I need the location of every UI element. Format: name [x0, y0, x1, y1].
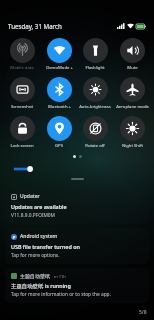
staticText: Flashlight [85, 65, 105, 71]
staticText: Android system [20, 233, 58, 240]
staticText: Mobile data [10, 65, 34, 71]
button[interactable]: Rotate off [77, 116, 113, 149]
staticText: Rotate off [85, 143, 105, 149]
staticText: Lock screen [10, 143, 34, 149]
staticText: Updates are available [11, 203, 67, 210]
staticText: 主题自动壁纸 is running [11, 282, 71, 289]
staticText: Tap for more options. [11, 252, 60, 259]
button[interactable]: Lock screen [4, 116, 40, 149]
staticText: P [13, 235, 16, 240]
button[interactable]: Mobile data [4, 38, 40, 71]
staticText: USB file transfer turned on [11, 243, 80, 250]
button[interactable]: Flashlight [77, 38, 113, 71]
button[interactable] [0, 163, 154, 175]
button[interactable]: Night Shift [114, 116, 150, 149]
staticText: Updater [20, 193, 40, 200]
staticText: Night Shift [122, 143, 143, 149]
staticText: GPS [55, 143, 63, 149]
button[interactable]: Screenshot [4, 77, 40, 110]
staticText: Tuesday, 31 March [8, 22, 62, 30]
button[interactable]: 主题自动壁纸 [5, 268, 149, 303]
staticText: V11.8.9.0.PFOIM0M [11, 212, 55, 219]
staticText: Screenshot [11, 104, 33, 110]
staticText: Tap for more information or to stop the … [11, 291, 111, 298]
button[interactable]: Aeroplane mode [114, 77, 150, 110]
staticText: Aeroplane mode [116, 104, 149, 110]
staticText: Mute [127, 65, 138, 71]
button[interactable]: Updater [5, 188, 149, 224]
button[interactable]: DemoMode + [41, 38, 77, 71]
staticText: 5/8 [139, 309, 147, 316]
staticText: 主题自动壁纸 [20, 273, 50, 279]
staticText: Auto-brightness [79, 104, 111, 110]
button[interactable]: Auto-brightness [77, 77, 113, 110]
button[interactable]: P [5, 228, 149, 264]
button[interactable]: GPS [41, 116, 77, 149]
staticText: Bluetooth + [48, 104, 71, 110]
button[interactable]: Mute [114, 38, 150, 71]
button[interactable]: Bluetooth + [41, 77, 77, 110]
staticText: · in 11h [52, 274, 66, 279]
staticText: DemoMode + [46, 65, 73, 71]
